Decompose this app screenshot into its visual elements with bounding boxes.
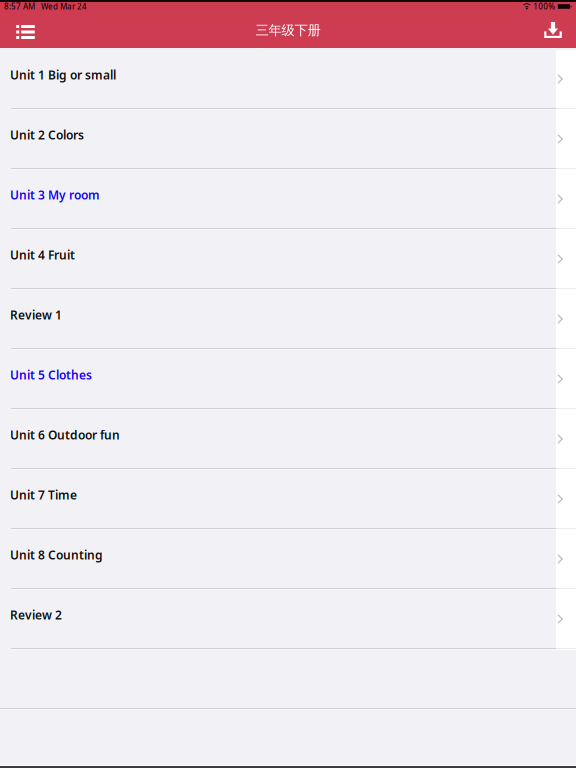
staticText: Unit 8 Counting — [10, 547, 103, 563]
button[interactable]: Unit 8 Counting — [0, 530, 576, 590]
staticText: Unit 1 Big or small — [10, 67, 116, 83]
button[interactable]: Review 1 — [0, 290, 576, 350]
button[interactable]: Table of contents — [9, 14, 42, 48]
staticText: 8:57 AM — [4, 1, 35, 12]
button[interactable]: Unit 2 Colors — [0, 110, 576, 170]
staticText: Unit 2 Colors — [10, 127, 84, 143]
button[interactable]: Download — [535, 14, 573, 48]
staticText: 三年级下册 — [255, 22, 320, 38]
staticText: Review 1 — [10, 307, 62, 323]
button[interactable]: Unit 6 Outdoor fun — [0, 410, 576, 470]
staticText: Unit 7 Time — [10, 487, 77, 503]
button[interactable]: Unit 3 My room — [0, 170, 576, 230]
staticText: Wed Mar 24 — [41, 1, 87, 12]
button[interactable]: Unit 4 Fruit — [0, 230, 576, 290]
button[interactable]: Unit 1 Big or small — [0, 50, 576, 110]
button[interactable]: Review 2 — [0, 590, 576, 650]
staticText: Unit 5 Clothes — [10, 367, 92, 383]
staticText: Unit 6 Outdoor fun — [10, 427, 120, 443]
staticText: Unit 3 My room — [10, 187, 100, 203]
staticText: Review 2 — [10, 607, 62, 623]
staticText: 100% — [533, 1, 555, 12]
button[interactable]: Unit 7 Time — [0, 470, 576, 530]
staticText: Unit 4 Fruit — [10, 247, 75, 263]
button[interactable]: Unit 5 Clothes — [0, 350, 576, 410]
